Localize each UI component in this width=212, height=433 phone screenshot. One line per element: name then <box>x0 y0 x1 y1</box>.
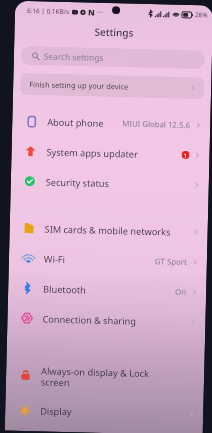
staticText: Bluetooth <box>43 282 171 299</box>
staticText: Wi-Fi <box>44 252 151 268</box>
staticText: 28% <box>195 10 208 19</box>
button[interactable]: Always-on display & Lock screen <box>6 355 204 399</box>
staticText: System apps updater <box>46 145 178 162</box>
staticText: Connection & sharing <box>42 312 187 329</box>
button[interactable]: Bluetooth <box>8 273 207 307</box>
button[interactable]: Security status <box>10 166 209 200</box>
button[interactable]: SIM cards & mobile networks <box>9 213 208 247</box>
staticText: Settings <box>94 25 134 40</box>
button[interactable]: Finish setting up your device <box>20 73 204 99</box>
staticText: MIUI Global 12.5.6 <box>122 118 190 131</box>
staticText: SIM cards & mobile networks <box>44 222 189 239</box>
button[interactable]: About phone <box>12 106 211 140</box>
staticText: Display <box>40 404 184 421</box>
staticText: GT Sport <box>155 256 187 268</box>
staticText: N <box>88 6 95 18</box>
button[interactable]: Search settings <box>21 46 205 69</box>
staticText: About phone <box>47 115 118 130</box>
button[interactable]: System apps updater <box>11 136 210 170</box>
button[interactable]: Connection & sharing <box>7 303 206 337</box>
staticText: Security status <box>46 175 190 192</box>
staticText: Finish setting up your device <box>29 79 128 91</box>
staticText: On <box>175 287 186 298</box>
button[interactable]: Wi-Fi <box>9 243 207 277</box>
staticText: ··· <box>97 8 103 18</box>
button[interactable]: Display <box>5 395 204 429</box>
staticText: Search settings <box>44 50 104 63</box>
staticText: 6:16 | 0.1KB/s <box>27 6 70 16</box>
staticText: 1 <box>183 152 188 159</box>
staticText: Always-on display & Lock screen <box>41 364 185 391</box>
